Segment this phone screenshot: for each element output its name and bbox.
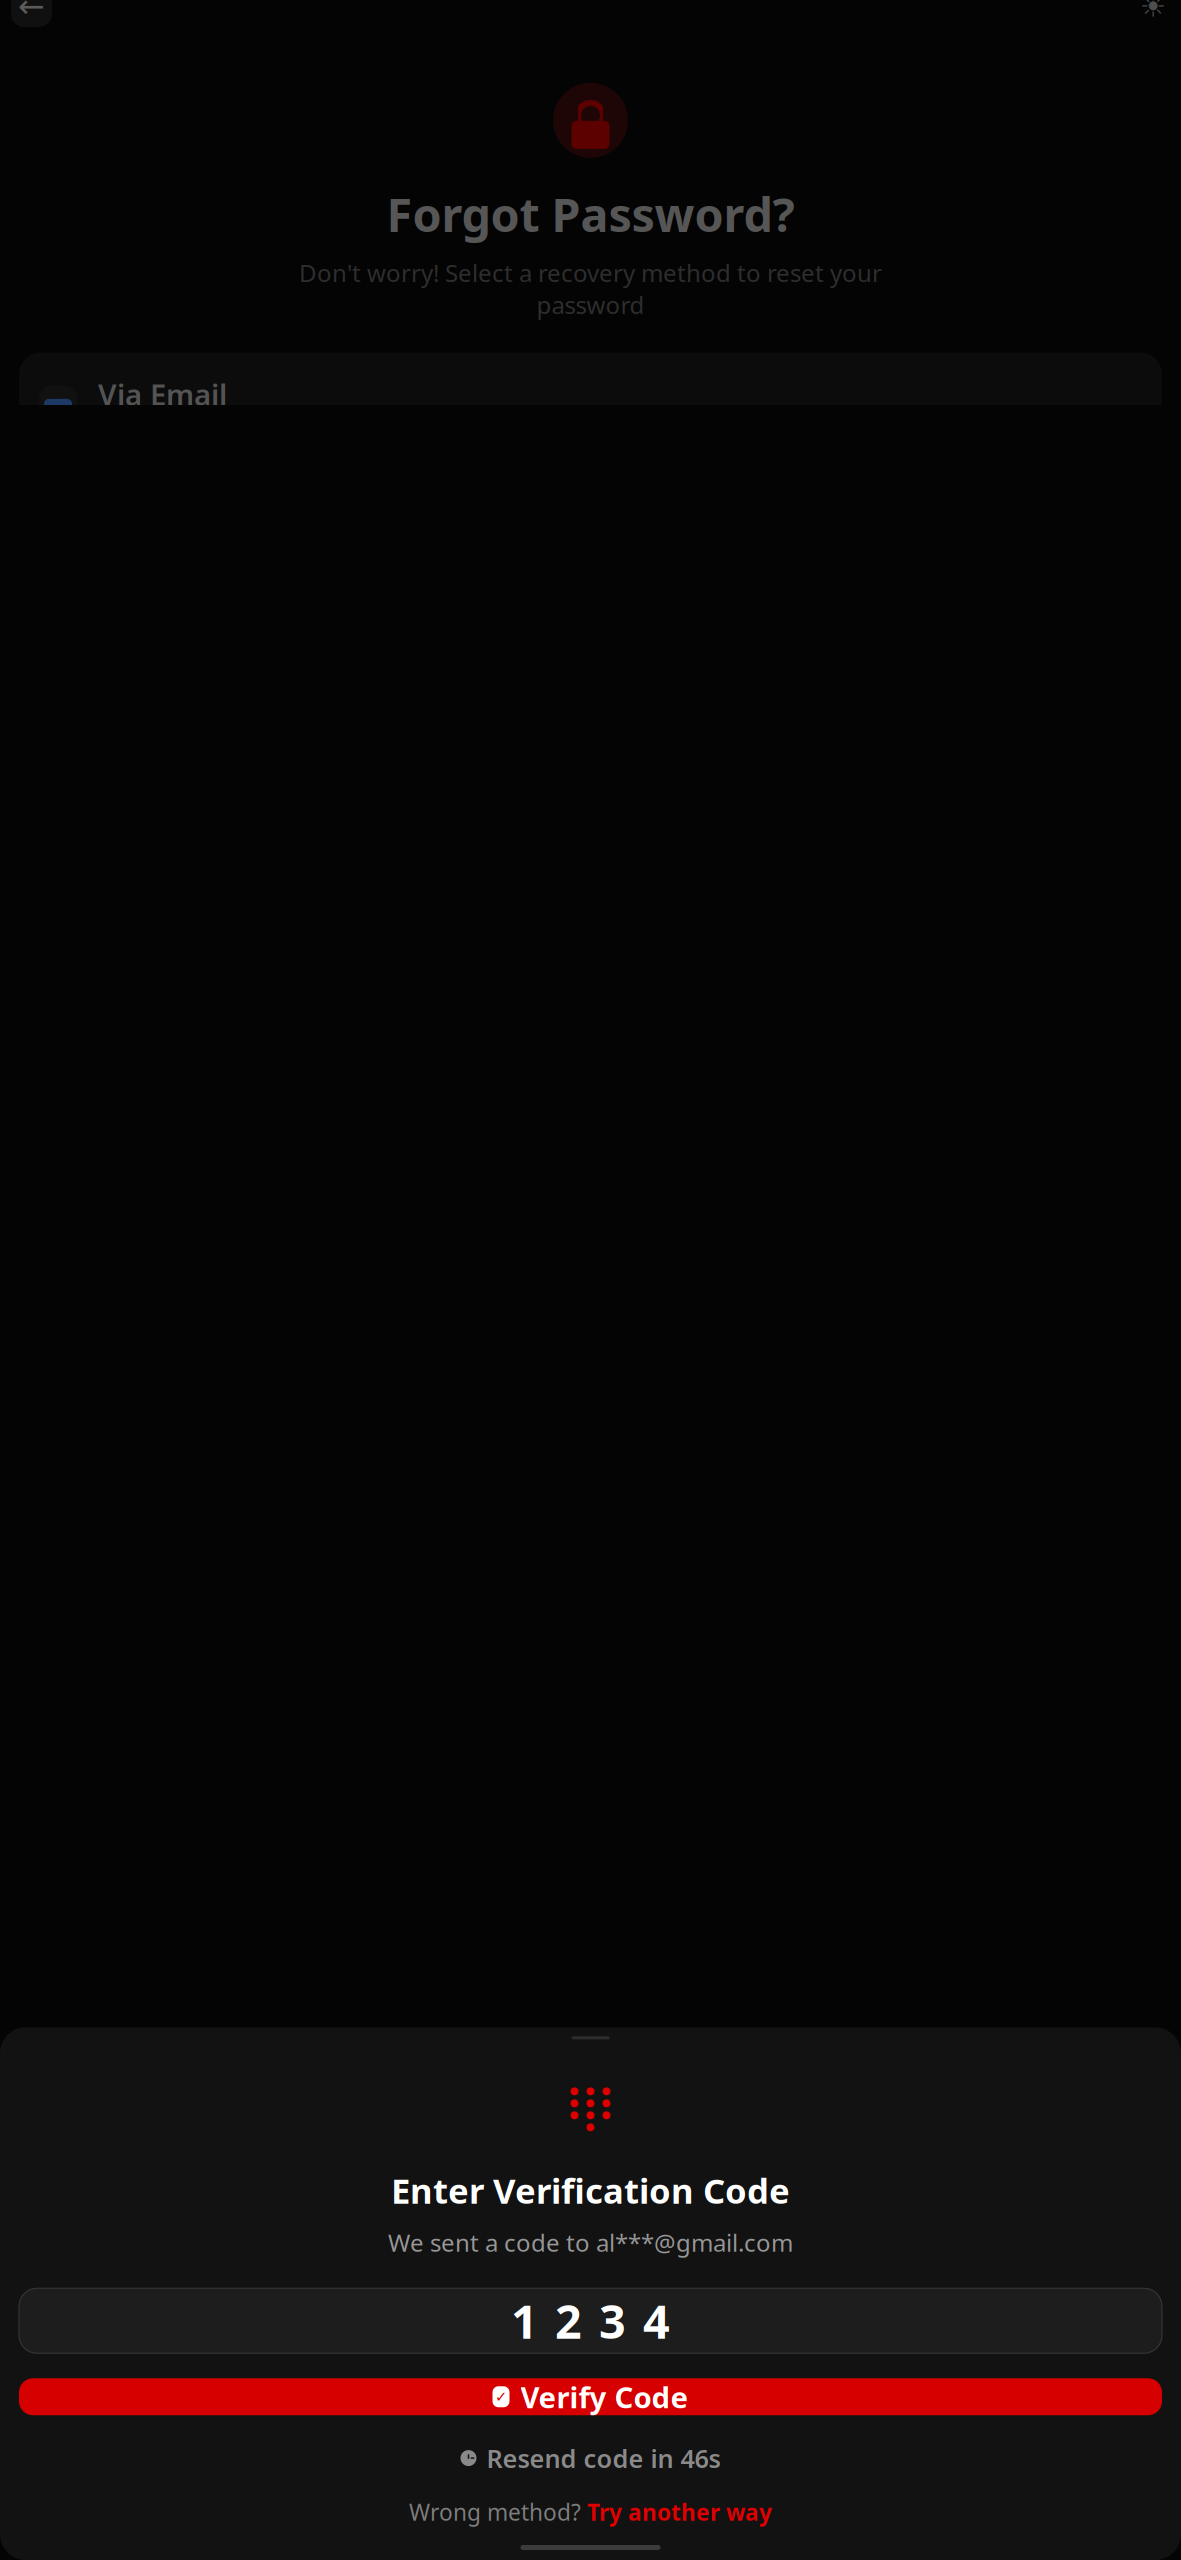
staticText: ✓ <box>495 2388 507 2405</box>
staticText: Don't worry! Select a recovery method to… <box>299 257 882 289</box>
staticText: Enter Verification Code <box>391 2167 790 2213</box>
staticText: 2 <box>555 2290 582 2352</box>
staticText: ☀ <box>1140 0 1166 23</box>
button[interactable]: Wrong method? <box>409 2497 772 2527</box>
staticText: Resend code in 46s <box>486 2441 720 2475</box>
button[interactable]: 1 <box>19 2288 1162 2353</box>
staticText: Verify Code <box>520 2377 688 2416</box>
button[interactable]: Brightness <box>1136 0 1170 23</box>
button[interactable]: Back <box>11 0 52 27</box>
staticText: ← <box>18 0 45 24</box>
staticText: Wrong method? <box>409 2497 587 2527</box>
staticText: password <box>536 289 644 321</box>
staticText: Try another way <box>587 2497 772 2527</box>
button[interactable]: ✓ <box>19 2378 1162 2415</box>
staticText: 3 <box>599 2290 626 2352</box>
staticText: We sent a code to al***@gmail.com <box>388 2226 793 2258</box>
staticText: 4 <box>643 2290 670 2352</box>
staticText: Forgot Password? <box>386 183 794 245</box>
staticText: Via Email <box>98 375 227 414</box>
staticText: › <box>1130 385 1142 435</box>
button[interactable]: Via Email <box>19 353 1162 467</box>
staticText: 1 <box>511 2290 538 2352</box>
button[interactable]: Resend code in 46s <box>460 2441 720 2475</box>
